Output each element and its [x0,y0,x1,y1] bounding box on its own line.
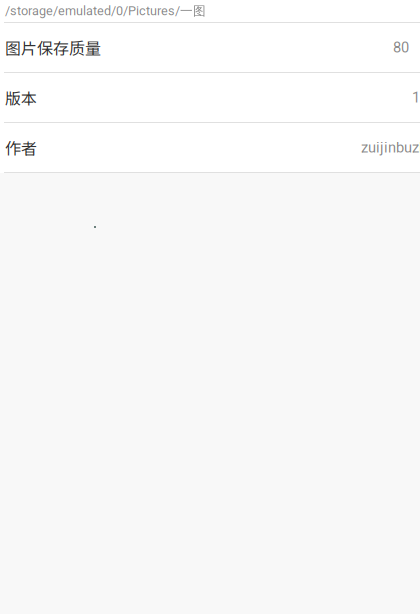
staticText: zuijinbuzhidao [361,139,420,156]
button[interactable]: 版本 [0,73,420,122]
staticText: 80 [393,39,409,56]
staticText: /storage/emulated/0/Pictures/一图 [5,3,206,19]
staticText: 1 [412,89,420,106]
button[interactable]: 图片保存质量 [0,23,420,72]
staticText: 版本 [5,86,37,109]
staticText: 图片保存质量 [5,36,101,59]
staticText: 作者 [5,136,37,159]
button[interactable]: 作者 [0,123,420,172]
